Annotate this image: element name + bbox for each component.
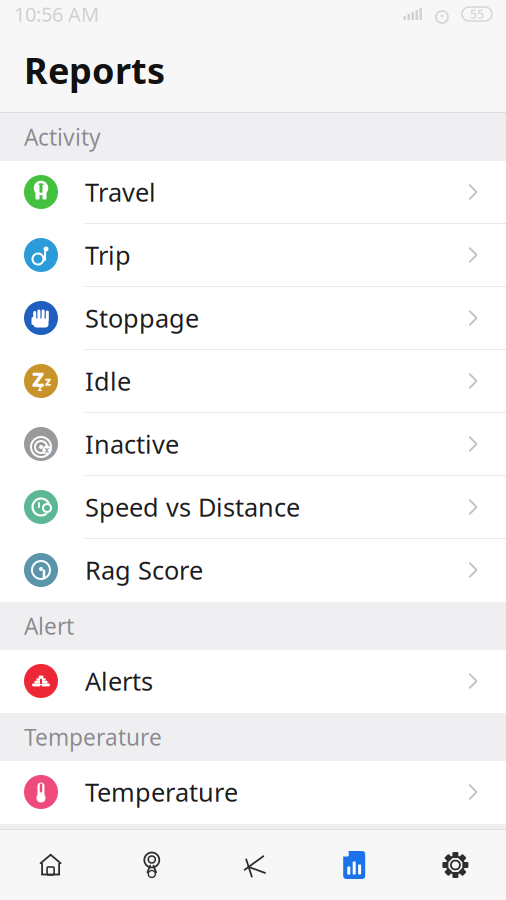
button[interactable]: Stoppage — [0, 287, 506, 350]
staticText: z — [38, 383, 42, 393]
button[interactable]: Settings — [405, 830, 506, 900]
button[interactable]: Trip — [0, 224, 506, 287]
button[interactable]: x — [0, 413, 506, 476]
staticText: x — [44, 445, 49, 455]
button[interactable]: Rag Score — [0, 539, 506, 602]
button[interactable]: Places — [101, 830, 202, 900]
staticText: z — [45, 373, 51, 389]
staticText: 10:56 AM — [14, 1, 99, 27]
staticText: Alerts — [85, 664, 153, 698]
button[interactable]: Temperature — [0, 761, 506, 824]
staticText: Inactive — [85, 427, 179, 461]
button[interactable]: Home — [0, 830, 101, 900]
button[interactable]: Travel — [0, 161, 506, 224]
button[interactable]: Alerts — [0, 650, 506, 713]
staticText: Reports — [24, 46, 165, 94]
staticText: Speed vs Distance — [85, 490, 300, 524]
staticText: Alert — [24, 611, 74, 641]
button[interactable]: Speed vs Distance — [0, 476, 506, 539]
staticText: Temperature — [24, 722, 162, 752]
staticText: Travel — [85, 175, 156, 209]
staticText: Rag Score — [85, 553, 203, 587]
staticText: Trip — [85, 238, 131, 272]
staticText: Z — [32, 366, 44, 392]
staticText: 55 — [470, 6, 484, 22]
staticText: Activity — [24, 122, 101, 152]
button[interactable]: Z — [0, 350, 506, 413]
button[interactable]: Navigate — [202, 830, 304, 900]
staticText: Stoppage — [85, 301, 199, 335]
button[interactable]: Reports — [304, 830, 405, 900]
staticText: Temperature — [85, 775, 238, 809]
staticText: Idle — [85, 364, 131, 398]
